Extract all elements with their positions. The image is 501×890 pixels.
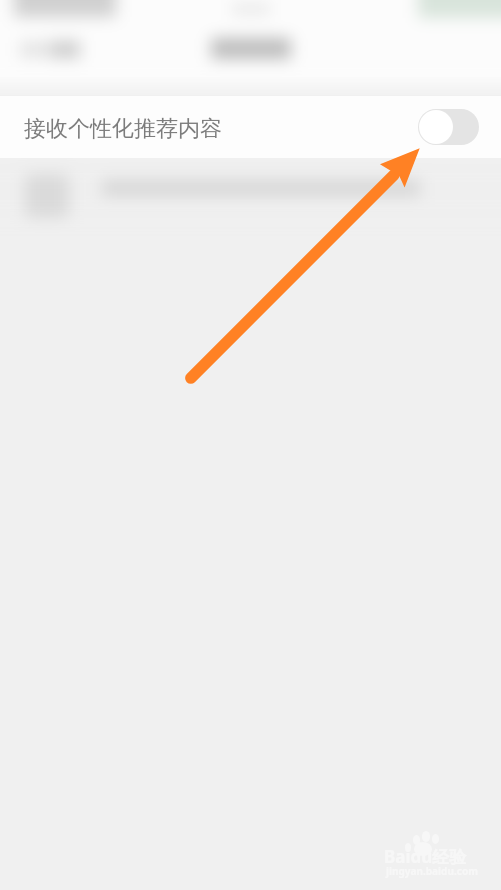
- staticText: Baidu经验: [384, 845, 467, 868]
- staticText: 接收个性化推荐内容: [24, 115, 222, 143]
- button[interactable]: 接收个性化推荐内容 开关: [418, 109, 479, 145]
- button[interactable]: 接收个性化推荐内容: [0, 96, 501, 158]
